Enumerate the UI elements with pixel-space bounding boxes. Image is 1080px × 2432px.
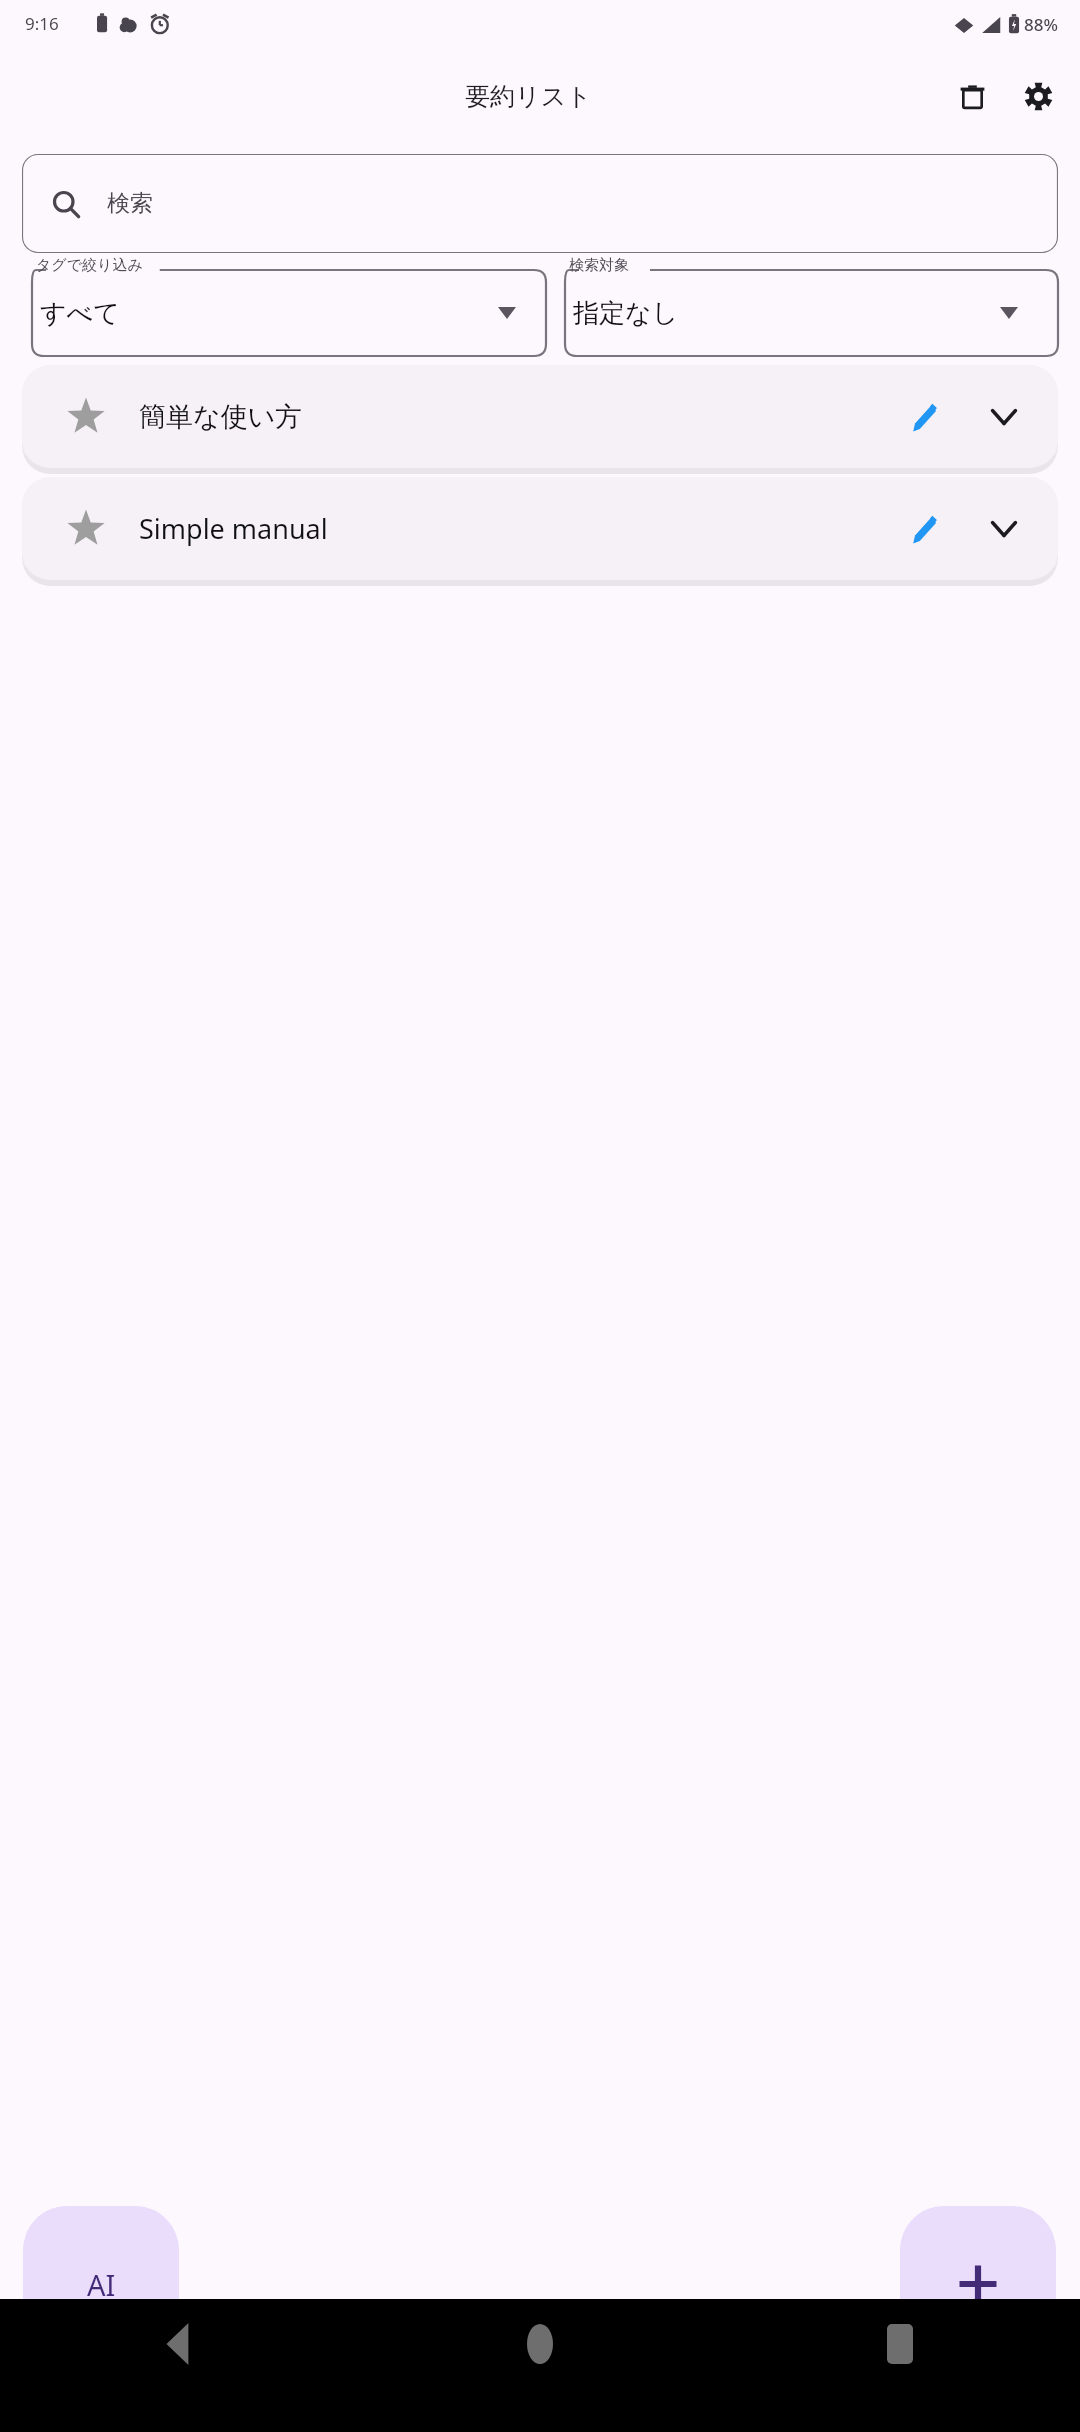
staticText: 要約リスト bbox=[465, 81, 592, 112]
button[interactable]: AI bbox=[23, 2206, 179, 2362]
staticText: 簡単な使い方 bbox=[139, 400, 888, 434]
button[interactable]: Simple manual bbox=[22, 477, 1058, 580]
button[interactable]: 簡単な使い方 bbox=[22, 365, 1058, 468]
button[interactable]: Edit bbox=[888, 381, 960, 453]
button[interactable]: Back bbox=[0, 2299, 360, 2389]
staticText: Simple manual bbox=[139, 510, 888, 547]
button[interactable]: タグで絞り込み bbox=[22, 260, 546, 356]
button[interactable]: 検索 bbox=[22, 154, 1058, 253]
staticText: すべて bbox=[40, 297, 498, 330]
staticText: 検索対象 bbox=[569, 256, 629, 275]
button[interactable]: Edit bbox=[888, 493, 960, 565]
button[interactable]: Add bbox=[900, 2206, 1056, 2362]
button[interactable]: Expand bbox=[968, 493, 1040, 565]
staticText: 9:16 bbox=[25, 12, 59, 35]
button[interactable]: Home bbox=[360, 2299, 720, 2389]
staticText: タグで絞り込み bbox=[36, 256, 143, 275]
staticText: 88% bbox=[1024, 13, 1058, 36]
staticText: 指定なし bbox=[573, 297, 1000, 330]
button[interactable]: 検索対象 bbox=[555, 260, 1058, 356]
button[interactable]: Recent apps bbox=[720, 2299, 1080, 2389]
button[interactable]: Expand bbox=[968, 381, 1040, 453]
button[interactable]: Delete bbox=[944, 68, 1000, 124]
button[interactable]: Settings bbox=[1010, 68, 1066, 124]
staticText: 検索 bbox=[107, 189, 153, 218]
staticText: AI bbox=[87, 2265, 116, 2304]
